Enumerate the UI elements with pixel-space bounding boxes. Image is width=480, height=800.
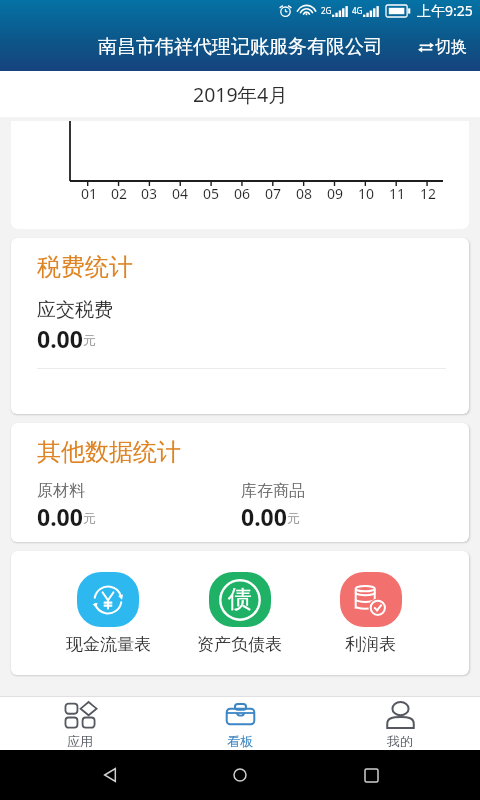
staticText: 10 <box>358 184 375 203</box>
staticText: 11 <box>389 184 406 203</box>
staticText: 元 <box>287 510 300 526</box>
staticText: 利润表 <box>345 634 396 655</box>
staticText: 03 <box>141 184 158 203</box>
staticText: 07 <box>265 184 282 203</box>
button[interactable]: 现金流量表 <box>42 572 174 655</box>
staticText: 09 <box>327 184 344 203</box>
staticText: 元 <box>83 510 96 526</box>
staticText: 4G <box>352 5 363 16</box>
staticText: 0.00 <box>37 323 83 354</box>
staticText: 05 <box>203 184 220 203</box>
button[interactable]: 应用 <box>0 697 160 750</box>
staticText: 税费统计 <box>37 252 133 282</box>
button[interactable]: 债 <box>174 572 305 655</box>
staticText: 库存商品 <box>241 481 305 501</box>
button[interactable]: 我的 <box>320 697 480 750</box>
button[interactable]: 利润表 <box>305 572 436 655</box>
staticText: 12 <box>420 184 437 203</box>
staticText: 资产负债表 <box>197 634 282 655</box>
staticText: 2G <box>321 5 332 16</box>
staticText: 02 <box>111 184 128 203</box>
staticText: 应交税费 <box>37 298 113 322</box>
button[interactable]: Home <box>219 754 261 796</box>
staticText: 现金流量表 <box>66 634 151 655</box>
button[interactable]: Back <box>89 754 131 796</box>
staticText: 切换 <box>435 37 467 57</box>
staticText: 01 <box>81 184 98 203</box>
staticText: 元 <box>83 332 96 348</box>
staticText: 0.00 <box>241 501 287 532</box>
staticText: 南昌市伟祥代理记账服务有限公司 <box>98 35 383 59</box>
button[interactable]: 看板 <box>160 697 320 750</box>
staticText: 06 <box>234 184 251 203</box>
button[interactable]: 切换 <box>408 29 480 65</box>
staticText: 其他数据统计 <box>37 437 181 467</box>
staticText: 04 <box>172 184 189 203</box>
staticText: 上午9:25 <box>417 1 473 20</box>
staticText: 看板 <box>227 733 253 749</box>
staticText: 0.00 <box>37 501 83 532</box>
staticText: 原材料 <box>37 481 85 501</box>
staticText: 应用 <box>67 733 93 749</box>
staticText: 2019年4月 <box>193 81 288 108</box>
staticText: 债 <box>228 584 252 614</box>
button[interactable]: Recents <box>350 754 392 796</box>
staticText: 我的 <box>387 733 413 749</box>
staticText: 08 <box>296 184 313 203</box>
